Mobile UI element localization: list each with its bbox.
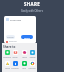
button[interactable]: WhatsApp — [3, 50, 11, 59]
staticText: Insta — [22, 56, 27, 59]
button[interactable]: Cancel — [6, 35, 15, 39]
staticText: SHARE — [0, 1, 64, 7]
button[interactable]: Drive — [3, 61, 11, 70]
staticText: Share to — [3, 45, 16, 49]
button[interactable]: Twitter — [28, 50, 36, 59]
button[interactable]: Send — [21, 35, 33, 39]
button[interactable]: Insta — [20, 50, 28, 59]
staticText: Line — [22, 67, 26, 70]
staticText: Twitter — [29, 56, 36, 59]
staticText: WhatsApp — [3, 56, 11, 59]
button[interactable]: Facebook — [11, 61, 19, 70]
staticText: Cancel — [7, 36, 14, 39]
staticText: Facebook — [11, 67, 19, 70]
staticText: Drive — [5, 67, 10, 70]
staticText: Chrome — [28, 67, 36, 70]
staticText: Send — [24, 36, 30, 39]
button[interactable]: Gmail — [11, 50, 19, 59]
staticText: Remove — [9, 40, 17, 43]
button[interactable]: Chrome — [28, 61, 36, 70]
staticText: Gmail — [12, 56, 18, 59]
button[interactable]: Line — [20, 61, 28, 70]
staticText: Photo.jpg — [10, 18, 21, 21]
staticText: Easily with Others — [0, 9, 64, 13]
